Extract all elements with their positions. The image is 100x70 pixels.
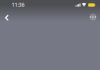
- button[interactable]: Back: [1, 11, 12, 24]
- staticText: 11:36: [11, 1, 24, 8]
- button[interactable]: More options: [87, 10, 98, 23]
